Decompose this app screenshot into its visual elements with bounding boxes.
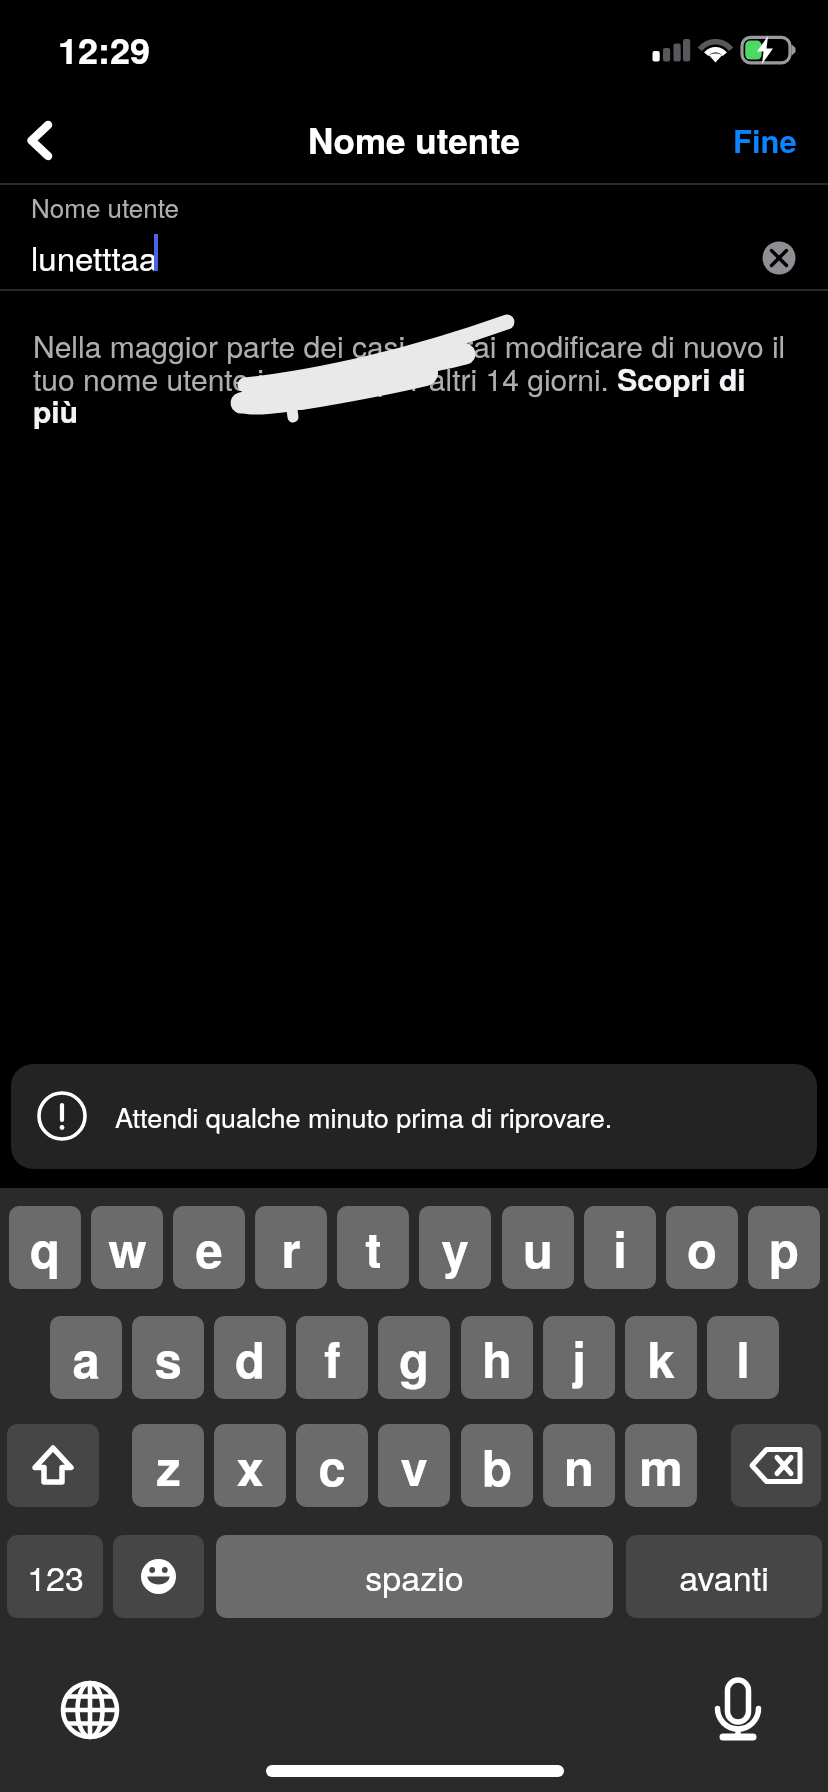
- staticText: 123: [27, 1552, 84, 1601]
- staticText: l: [736, 1323, 750, 1393]
- staticText: Nome utente: [308, 115, 520, 165]
- button[interactable]: s: [132, 1316, 204, 1399]
- staticText: spazio: [365, 1552, 464, 1601]
- staticText: y: [441, 1213, 469, 1283]
- button[interactable]: w: [91, 1206, 163, 1289]
- button[interactable]: e: [173, 1206, 245, 1289]
- button[interactable]: k: [625, 1316, 697, 1399]
- button[interactable]: n: [543, 1424, 615, 1507]
- staticText: v: [400, 1431, 428, 1501]
- staticText: c: [318, 1431, 346, 1501]
- staticText: e: [195, 1213, 223, 1283]
- button[interactable]: p: [748, 1206, 820, 1289]
- staticText: i: [613, 1213, 627, 1283]
- staticText: t: [365, 1213, 382, 1283]
- button[interactable]: x: [214, 1424, 286, 1507]
- staticText: Fine: [733, 118, 797, 162]
- staticText: b: [482, 1431, 512, 1501]
- staticText: g: [399, 1323, 429, 1393]
- staticText: n: [564, 1431, 594, 1501]
- button[interactable]: Indietro: [4, 104, 76, 176]
- staticText: w: [108, 1213, 147, 1283]
- button[interactable]: Cambia tastiera: [62, 1682, 118, 1738]
- button[interactable]: l: [707, 1316, 779, 1399]
- button[interactable]: Fine: [727, 110, 803, 170]
- staticText: m: [639, 1431, 683, 1501]
- button[interactable]: Cancella testo: [757, 236, 801, 280]
- staticText: s: [154, 1323, 182, 1393]
- button[interactable]: lunetttaa: [31, 233, 158, 280]
- button[interactable]: c: [296, 1424, 368, 1507]
- button[interactable]: j: [543, 1316, 615, 1399]
- button[interactable]: q: [9, 1206, 81, 1289]
- button[interactable]: Backspace: [731, 1424, 821, 1507]
- staticText: k: [647, 1323, 675, 1393]
- button[interactable]: z: [132, 1424, 204, 1507]
- button[interactable]: spazio: [216, 1535, 613, 1618]
- button[interactable]: t: [337, 1206, 409, 1289]
- button[interactable]: o: [666, 1206, 738, 1289]
- staticText: o: [687, 1213, 717, 1283]
- staticText: Attendi qualche minuto prima di riprovar…: [115, 1097, 613, 1136]
- button[interactable]: m: [625, 1424, 697, 1507]
- staticText: a: [72, 1323, 100, 1393]
- staticText: r: [281, 1213, 301, 1283]
- staticText: q: [30, 1213, 60, 1283]
- button[interactable]: y: [419, 1206, 491, 1289]
- staticText: Nella maggior parte dei casi, potrai mod…: [33, 324, 798, 432]
- staticText: avanti: [679, 1552, 769, 1601]
- button[interactable]: Emoji: [113, 1535, 204, 1618]
- button[interactable]: a: [50, 1316, 122, 1399]
- button[interactable]: b: [461, 1424, 533, 1507]
- staticText: f: [324, 1323, 341, 1393]
- staticText: h: [482, 1323, 512, 1393]
- staticText: j: [572, 1323, 586, 1393]
- button[interactable]: h: [461, 1316, 533, 1399]
- button[interactable]: Dettatura: [710, 1678, 766, 1742]
- button[interactable]: g: [378, 1316, 450, 1399]
- staticText: z: [156, 1431, 181, 1501]
- staticText: lunetttaa: [31, 233, 158, 280]
- button[interactable]: r: [255, 1206, 327, 1289]
- button[interactable]: f: [296, 1316, 368, 1399]
- button[interactable]: u: [502, 1206, 574, 1289]
- button[interactable]: v: [378, 1424, 450, 1507]
- button[interactable]: 123: [7, 1535, 103, 1618]
- staticText: Nome utente: [31, 188, 180, 225]
- button[interactable]: Maiuscole: [7, 1424, 99, 1507]
- button[interactable]: avanti: [626, 1535, 822, 1618]
- staticText: d: [235, 1323, 265, 1393]
- button[interactable]: Attendi qualche minuto prima di riprovar…: [11, 1064, 817, 1169]
- staticText: 12:29: [58, 23, 151, 75]
- button[interactable]: d: [214, 1316, 286, 1399]
- staticText: x: [236, 1431, 264, 1501]
- button[interactable]: i: [584, 1206, 656, 1289]
- staticText: p: [769, 1213, 799, 1283]
- staticText: u: [523, 1213, 553, 1283]
